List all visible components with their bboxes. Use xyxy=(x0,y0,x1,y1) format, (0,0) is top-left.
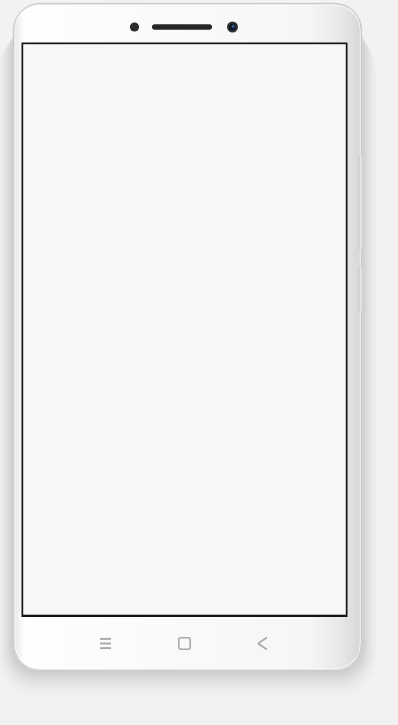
button[interactable]: Recent apps xyxy=(84,626,128,662)
button[interactable]: Back xyxy=(241,626,285,662)
button[interactable]: Home xyxy=(163,626,207,662)
